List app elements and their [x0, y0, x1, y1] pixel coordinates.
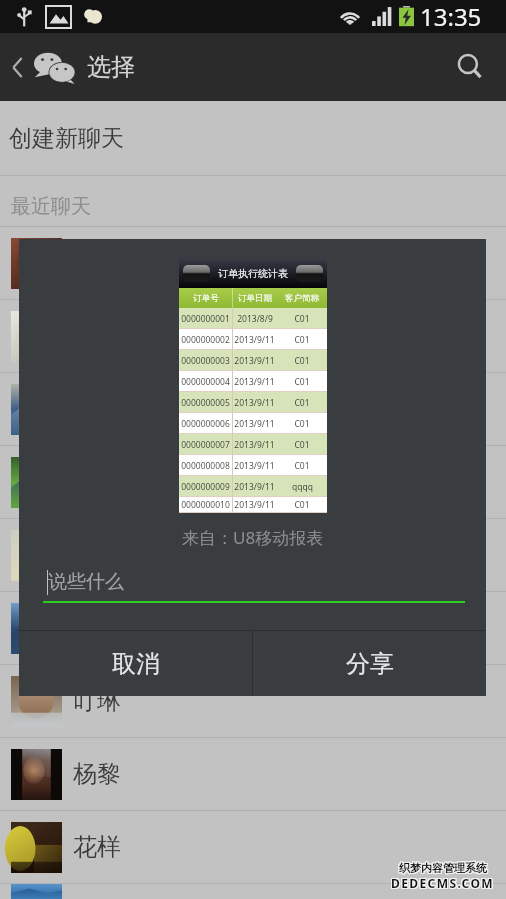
- staticText: C01: [294, 460, 310, 472]
- button[interactable]: 杨黎: [0, 738, 506, 811]
- button[interactable]: [0, 227, 506, 300]
- staticText: 0000000002: [181, 334, 230, 346]
- button[interactable]: 取消: [19, 631, 252, 696]
- staticText: 0000000004: [181, 376, 230, 388]
- staticText: 0000000003: [181, 355, 230, 367]
- staticText: DEDECMS.COM: [391, 874, 495, 890]
- staticText: 0000000010: [181, 499, 230, 511]
- button[interactable]: Back: [2, 41, 32, 93]
- button: 订单执行统计表: [19, 239, 486, 696]
- staticText: 0000000008: [181, 460, 230, 472]
- staticText: C01: [294, 499, 310, 511]
- staticText: 2013/9/11: [234, 397, 275, 409]
- staticText: 0000000006: [181, 418, 230, 430]
- staticText: C01: [294, 334, 310, 346]
- staticText: 分享: [346, 649, 394, 679]
- staticText: 说些什么: [48, 570, 124, 594]
- staticText: DEDECMS.COM: [391, 875, 495, 891]
- staticText: DEDECMS.COM: [392, 874, 496, 890]
- button[interactable]: [0, 373, 506, 446]
- staticText: 取消: [112, 649, 160, 679]
- staticText: 杨黎: [73, 759, 121, 789]
- staticText: 2013/9/11: [234, 439, 275, 451]
- staticText: 2013/9/11: [234, 334, 275, 346]
- button[interactable]: Search: [446, 43, 494, 91]
- staticText: 0000000005: [181, 397, 230, 409]
- staticText: 织梦内容管理系统: [400, 862, 488, 876]
- staticText: 织梦内容管理系统: [398, 861, 486, 875]
- staticText: 织梦内容管理系统: [398, 860, 486, 874]
- staticText: 2013/9/11: [234, 355, 275, 367]
- staticText: 织梦内容管理系统: [399, 861, 487, 875]
- staticText: DEDECMS.COM: [392, 875, 496, 891]
- staticText: 2013/9/11: [234, 418, 275, 430]
- button[interactable]: 叮琳: [0, 665, 506, 738]
- staticText: 2013/9/11: [234, 499, 275, 511]
- staticText: C01: [294, 439, 310, 451]
- staticText: 订单日期: [238, 293, 272, 304]
- staticText: 订单号: [193, 293, 219, 304]
- staticText: 0000000001: [181, 313, 230, 325]
- staticText: 织梦内容管理系统: [400, 860, 488, 874]
- staticText: C01: [294, 376, 310, 388]
- staticText: 2013/9/11: [234, 376, 275, 388]
- button[interactable]: [0, 519, 506, 592]
- staticText: 2013/8/9: [237, 313, 273, 325]
- staticText: C01: [294, 397, 310, 409]
- staticText: 织梦内容管理系统: [400, 861, 488, 875]
- staticText: C01: [294, 418, 310, 430]
- staticText: 叮琳: [73, 686, 121, 716]
- staticText: 织梦内容管理系统: [398, 862, 486, 876]
- staticText: 客户简称: [285, 293, 319, 304]
- staticText: 创建新聊天: [9, 124, 124, 153]
- button[interactable]: 分享: [253, 631, 486, 696]
- staticText: 2013/9/11: [234, 460, 275, 472]
- staticText: 订单执行统计表: [218, 267, 288, 280]
- staticText: C01: [294, 313, 310, 325]
- button[interactable]: 花样: [0, 811, 506, 884]
- staticText: 0000000009: [181, 481, 230, 493]
- staticText: DEDECMS.COM: [390, 876, 494, 892]
- staticText: DEDECMS.COM: [390, 875, 494, 891]
- staticText: 来自：U8移动报表: [182, 526, 324, 549]
- staticText: DEDECMS.COM: [391, 876, 495, 892]
- staticText: 0000000007: [181, 439, 230, 451]
- staticText: 13:35: [420, 0, 482, 33]
- button[interactable]: [0, 592, 506, 665]
- staticText: 织梦内容管理系统: [399, 860, 487, 874]
- button[interactable]: 创建新聊天: [0, 101, 506, 175]
- staticText: DEDECMS.COM: [390, 874, 494, 890]
- staticText: 最近聊天: [11, 194, 91, 219]
- button[interactable]: [0, 300, 506, 373]
- staticText: 织梦内容管理系统: [399, 862, 487, 876]
- staticText: 花样: [73, 832, 121, 862]
- button[interactable]: [0, 884, 506, 899]
- staticText: 2013/9/11: [234, 481, 275, 493]
- button[interactable]: [0, 446, 506, 519]
- staticText: DEDECMS.COM: [392, 876, 496, 892]
- staticText: C01: [294, 355, 310, 367]
- staticText: qqqq: [292, 481, 313, 493]
- staticText: 选择: [87, 52, 135, 82]
